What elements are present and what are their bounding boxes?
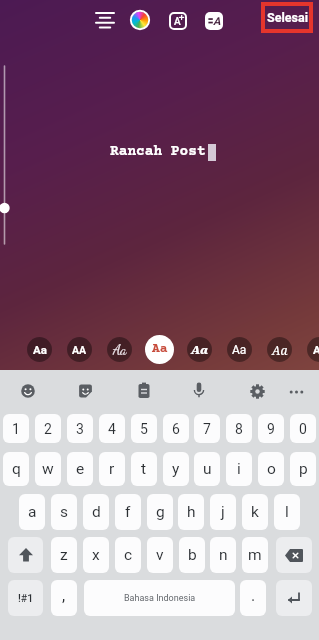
button[interactable]: q [3,452,29,486]
staticText: 0 [299,421,307,437]
button[interactable]: 2 [35,414,61,443]
button[interactable]: , [51,580,77,616]
staticText: !#1 [18,592,34,604]
button[interactable]: Aa [227,337,252,362]
button[interactable]: Aa [187,337,212,362]
button[interactable]: 1 [3,414,29,443]
staticText: Aa [232,343,247,357]
button[interactable]: 0 [290,414,316,443]
button[interactable]: AA [67,337,92,362]
button[interactable]: 3 [67,414,93,443]
staticText: 8 [235,421,243,437]
staticText: p [299,460,308,478]
button[interactable] [276,580,312,616]
staticText: Aa [191,342,209,358]
button[interactable]: Aa [267,337,292,362]
button[interactable]: l [274,494,300,530]
staticText: Rancah Post [110,144,206,160]
staticText: 5 [140,421,148,437]
button[interactable]: x [83,537,109,573]
staticText: Selesai [267,10,308,25]
staticText: g [156,503,165,521]
button[interactable]: o [258,452,284,486]
button[interactable]: p [290,452,316,486]
button[interactable]: b [179,537,205,573]
staticText: j [221,503,225,521]
staticText: , [62,586,66,605]
button[interactable]: 9 [258,414,284,443]
staticText: v [156,546,164,564]
staticText: y [172,460,180,478]
button[interactable]: !#1 [8,580,43,616]
staticText: Aa [313,343,319,356]
button[interactable]: c [115,537,141,573]
button[interactable]: y [163,452,189,486]
button[interactable]: Selesai [261,2,313,33]
button[interactable]: z [51,537,77,573]
staticText: f [125,503,131,521]
button[interactable]: Aa [107,337,132,362]
button[interactable]: u [194,452,220,486]
button[interactable]: r [99,452,125,486]
button[interactable] [276,537,312,573]
button[interactable]: A [205,12,223,30]
button[interactable] [129,9,151,31]
button[interactable]: Aa [145,335,174,364]
staticText: b [188,546,197,564]
staticText: 3 [76,421,84,437]
button[interactable]: 4 [99,414,125,443]
button[interactable]: s [51,494,77,530]
staticText: 7 [203,421,211,437]
button[interactable]: 6 [163,414,189,443]
button[interactable]: f [115,494,141,530]
button[interactable]: 8 [226,414,252,443]
button[interactable]: k [242,494,268,530]
staticText: Aa [152,342,168,357]
staticText: 1 [12,421,20,437]
staticText: Aa [33,343,47,356]
staticText: e [76,460,85,478]
button[interactable]: 7 [194,414,220,443]
button[interactable]: e [67,452,93,486]
staticText: 4 [108,421,116,437]
button[interactable]: Aa [307,337,319,362]
button[interactable]: w [35,452,61,486]
staticText: k [251,503,259,521]
staticText: l [285,503,289,521]
button[interactable]: n [210,537,236,573]
button[interactable]: 5 [131,414,157,443]
button[interactable]: h [178,494,204,530]
staticText: Aa [272,342,288,358]
button[interactable]: g [147,494,173,530]
staticText: A [213,15,221,28]
staticText: q [12,460,21,478]
staticText: 6 [172,421,180,437]
staticText: c [124,546,133,564]
button[interactable]: A [169,12,187,30]
button[interactable]: . [240,580,266,616]
button[interactable]: v [147,537,173,573]
staticText: h [187,503,196,521]
staticText: a [28,503,37,521]
staticText: m [248,546,262,564]
button[interactable]: t [131,452,157,486]
staticText: o [267,460,276,478]
staticText: u [203,460,212,478]
button[interactable]: Aa [27,337,52,362]
staticText: Aa [113,341,127,358]
staticText: AA [72,344,87,356]
staticText: z [60,546,68,564]
button[interactable]: d [83,494,109,530]
button[interactable]: a [19,494,45,530]
button[interactable]: j [210,494,236,530]
button[interactable]: m [242,537,268,573]
staticText: d [92,503,101,521]
staticText: Bahasa Indonesia [124,593,196,604]
staticText: w [42,460,54,478]
button[interactable] [8,537,43,573]
staticText: x [92,546,100,564]
button[interactable]: i [226,452,252,486]
button[interactable] [91,6,119,34]
staticText: s [60,503,68,521]
button[interactable]: Bahasa Indonesia [84,580,235,616]
